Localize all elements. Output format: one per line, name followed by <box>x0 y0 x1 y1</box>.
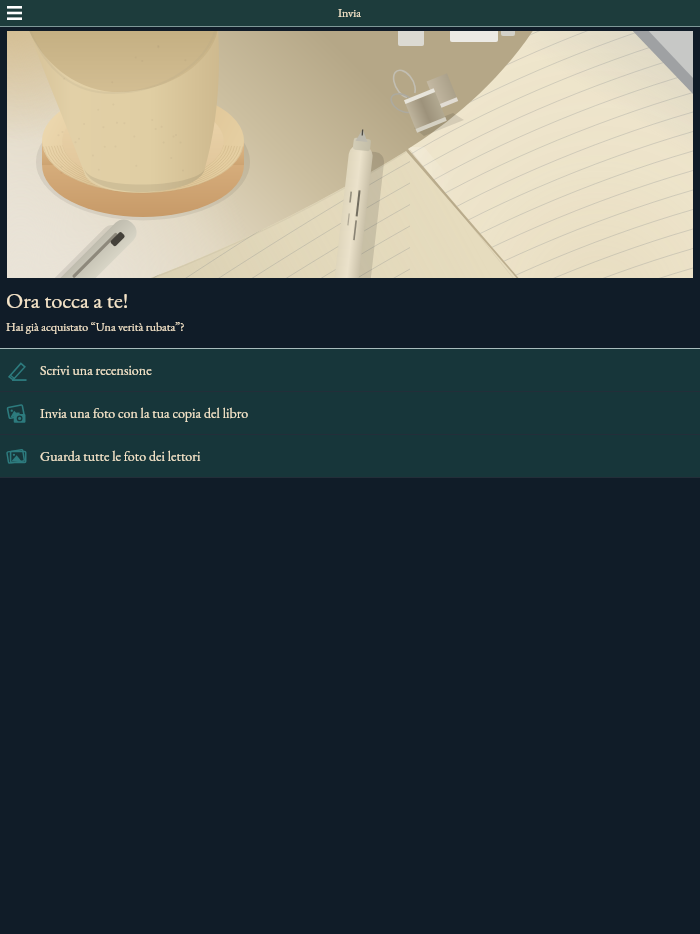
button[interactable]: Scrivi una recensione <box>0 349 700 391</box>
staticText: Guarda tutte le foto dei lettori <box>40 447 201 465</box>
button[interactable]: Menu <box>2 1 26 25</box>
staticText: Invia una foto con la tua copia del libr… <box>40 404 249 422</box>
staticText: Ora tocca a te! <box>6 285 129 314</box>
staticText: Invia <box>338 5 362 21</box>
staticText: Scrivi una recensione <box>40 361 152 379</box>
button[interactable]: Invia una foto con la tua copia del libr… <box>0 392 700 434</box>
staticText: Hai già acquistato “Una verità rubata”? <box>6 319 185 335</box>
button[interactable]: Guarda tutte le foto dei lettori <box>0 435 700 477</box>
